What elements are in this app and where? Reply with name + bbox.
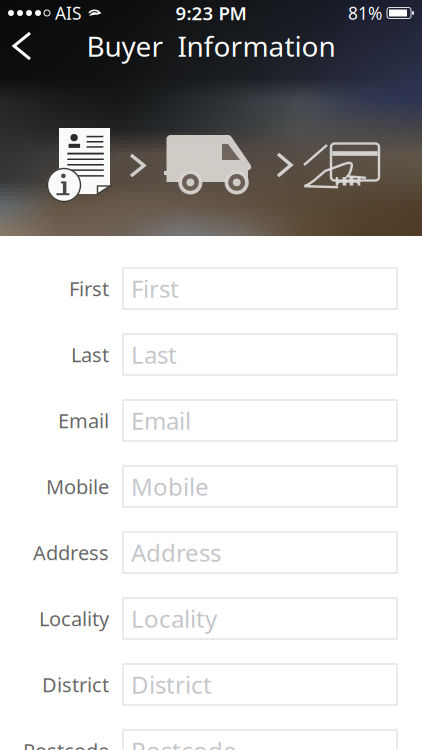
staticText: District — [42, 671, 109, 698]
staticText: Email — [131, 405, 191, 436]
staticText: AIS — [55, 1, 82, 24]
staticText: Last — [131, 339, 177, 370]
staticText: District — [131, 669, 212, 700]
button[interactable]: Last — [123, 334, 397, 375]
button[interactable]: Address — [123, 532, 397, 573]
button[interactable]: Back — [0, 25, 44, 67]
staticText: Address — [33, 539, 109, 566]
staticText: Mobile — [46, 473, 109, 500]
staticText: Postcode — [131, 735, 237, 750]
button[interactable]: Mobile — [123, 466, 397, 507]
staticText: 81% — [348, 1, 382, 24]
button[interactable]: Postcode — [123, 730, 397, 750]
staticText: First — [69, 275, 109, 302]
staticText: 9:23 PM — [175, 1, 246, 25]
button[interactable]: Email — [123, 400, 397, 441]
staticText: Mobile — [131, 471, 209, 502]
button[interactable]: First — [123, 268, 397, 309]
staticText: Address — [131, 537, 221, 568]
staticText: Email — [58, 407, 109, 434]
staticText: Postcode — [23, 737, 109, 750]
staticText: Last — [71, 341, 109, 368]
button[interactable]: District — [123, 664, 397, 705]
staticText: Locality — [131, 603, 217, 634]
button[interactable]: Locality — [123, 598, 397, 639]
staticText: Buyer Information — [86, 27, 335, 65]
staticText: Locality — [39, 605, 109, 632]
staticText: First — [131, 273, 179, 304]
